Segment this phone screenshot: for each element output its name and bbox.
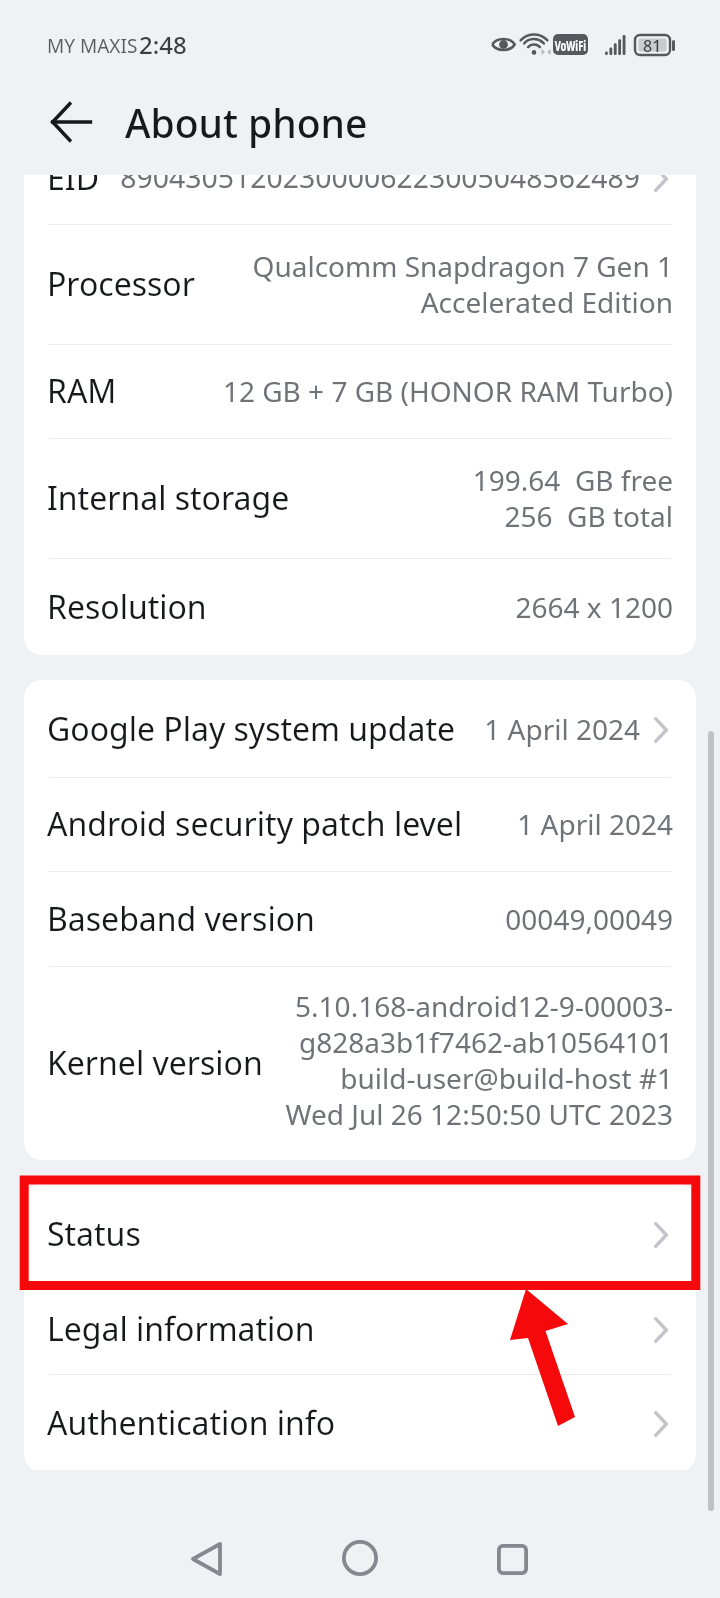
staticText: Resolution: [47, 585, 207, 629]
button[interactable]: Kernel version: [24, 966, 696, 1160]
staticText: 1 April 2024: [517, 805, 673, 843]
staticText: Qualcomm Snapdragon 7 Gen 1 Accelerated …: [252, 247, 673, 321]
button[interactable]: RAM: [24, 344, 696, 438]
button[interactable]: Back: [27, 78, 115, 166]
staticText: 2664 x 1200: [515, 588, 673, 626]
button[interactable]: Google Play system update: [24, 680, 696, 777]
button[interactable]: Home: [313, 1512, 406, 1598]
staticText: Legal information: [47, 1307, 315, 1351]
button[interactable]: Android security patch level: [24, 777, 696, 871]
staticText: VoWiFi: [555, 35, 586, 54]
staticText: 199.64 GB free 256 GB total: [472, 461, 673, 535]
staticText: 2:48: [139, 28, 187, 61]
button[interactable]: Internal storage: [24, 438, 696, 558]
staticText: Processor: [47, 262, 195, 306]
staticText: Google Play system update: [47, 707, 456, 751]
staticText: MY MAXIS: [47, 33, 138, 59]
staticText: RAM: [47, 369, 117, 413]
staticText: Kernel version: [47, 1041, 263, 1085]
button[interactable]: Legal information: [24, 1283, 696, 1374]
staticText: Internal storage: [47, 476, 290, 520]
button[interactable]: Baseband version: [24, 871, 696, 966]
staticText: Baseband version: [47, 897, 315, 941]
staticText: 5.10.168-android12-9-00003- g828a3b1f746…: [285, 987, 673, 1133]
button[interactable]: EID: [24, 175, 696, 224]
staticText: Status: [47, 1212, 141, 1256]
button[interactable]: Recent apps: [466, 1513, 559, 1598]
staticText: 89043051202300006223005048562489: [120, 175, 640, 197]
button[interactable]: Back: [160, 1513, 253, 1598]
staticText: 12 GB + 7 GB (HONOR RAM Turbo): [222, 372, 673, 410]
staticText: 00049,00049: [505, 900, 673, 938]
button[interactable]: Processor: [24, 224, 696, 344]
staticText: 81: [643, 35, 662, 55]
button[interactable]: Status: [24, 1184, 696, 1283]
staticText: Android security patch level: [47, 802, 463, 846]
staticText: About phone: [125, 96, 368, 149]
staticText: EID: [47, 175, 100, 200]
staticText: Authentication info: [47, 1401, 336, 1445]
button[interactable]: Resolution: [24, 558, 696, 655]
button[interactable]: Authentication info: [24, 1374, 696, 1470]
staticText: 1 April 2024: [484, 710, 640, 748]
